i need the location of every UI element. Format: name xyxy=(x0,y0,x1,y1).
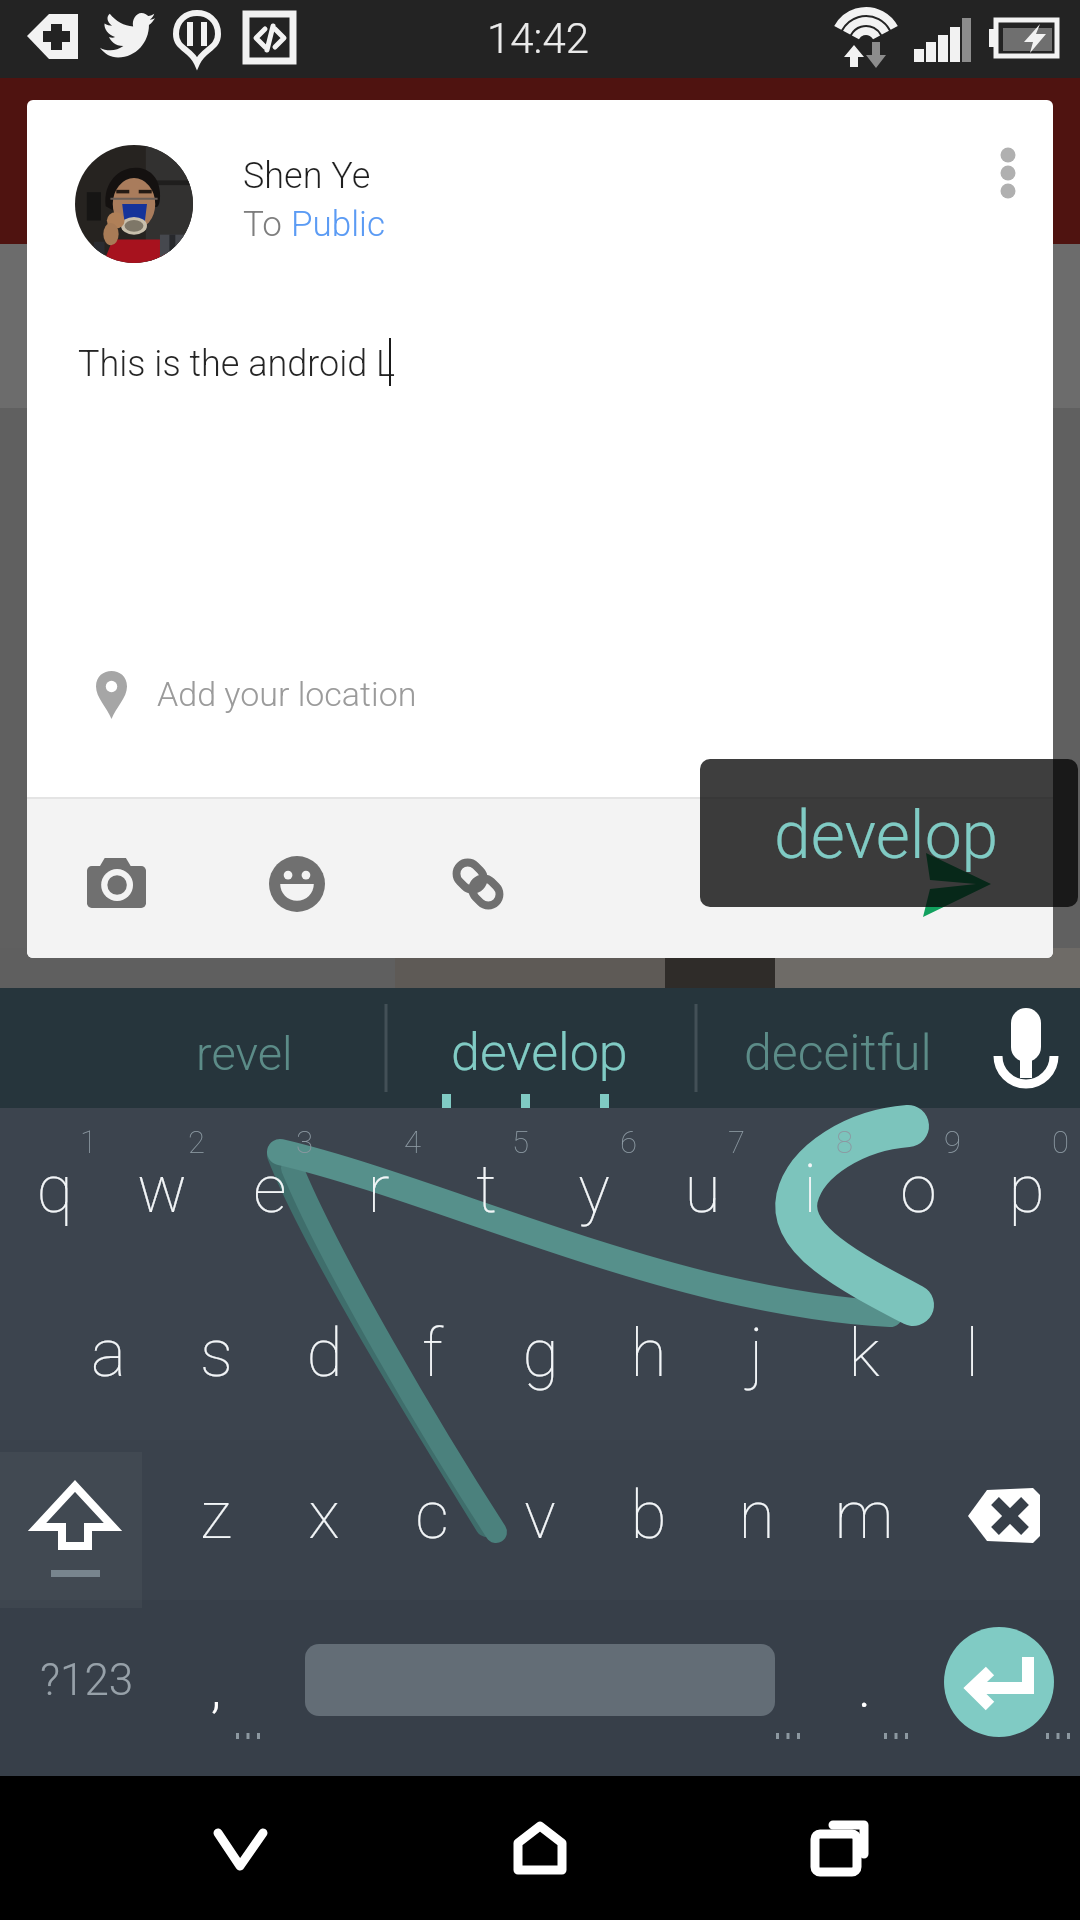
button[interactable] xyxy=(864,1108,972,1272)
staticText: To xyxy=(243,204,291,245)
staticText: Add your location xyxy=(157,674,417,714)
button[interactable] xyxy=(27,650,1053,740)
button[interactable] xyxy=(386,988,696,1108)
staticText: b xyxy=(630,1477,667,1554)
staticText: . xyxy=(858,1659,871,1720)
button[interactable]: Back xyxy=(150,1776,330,1920)
staticText: x xyxy=(308,1477,340,1554)
button[interactable]: Recents xyxy=(750,1776,930,1920)
button[interactable]: Camera xyxy=(59,830,174,936)
button[interactable] xyxy=(702,1432,810,1592)
button[interactable] xyxy=(0,988,386,1108)
staticText: 8 xyxy=(836,1124,853,1160)
staticText: develop xyxy=(451,1022,628,1083)
button[interactable] xyxy=(930,1592,1080,1776)
staticText: i xyxy=(803,1151,817,1228)
staticText: 4 xyxy=(404,1124,421,1160)
button[interactable] xyxy=(594,1432,702,1592)
button[interactable] xyxy=(648,1108,756,1272)
staticText: w xyxy=(137,1151,187,1228)
staticText: This is the android L xyxy=(78,343,396,385)
staticText: m xyxy=(834,1477,894,1554)
staticText: ?123 xyxy=(40,1654,134,1706)
staticText: v xyxy=(524,1477,556,1554)
staticText: r xyxy=(367,1151,390,1228)
button[interactable] xyxy=(0,1592,160,1776)
staticText: k xyxy=(848,1315,880,1392)
button[interactable] xyxy=(324,1108,432,1272)
button[interactable] xyxy=(972,1108,1080,1272)
button[interactable] xyxy=(700,759,1078,907)
button[interactable] xyxy=(54,1272,162,1432)
staticText: g xyxy=(522,1315,559,1392)
staticText: f xyxy=(422,1315,443,1392)
staticText: n xyxy=(738,1477,775,1554)
staticText: Public xyxy=(291,204,385,245)
button[interactable] xyxy=(810,1432,918,1592)
button[interactable]: Home xyxy=(450,1776,630,1920)
button[interactable] xyxy=(702,1272,810,1432)
button[interactable] xyxy=(0,1432,140,1592)
button[interactable] xyxy=(940,1432,1080,1592)
staticText: 3 xyxy=(296,1124,313,1160)
staticText: l xyxy=(965,1315,979,1392)
staticText: o xyxy=(900,1151,937,1228)
button[interactable] xyxy=(0,1108,108,1272)
staticText: y xyxy=(578,1151,610,1228)
staticText: p xyxy=(1008,1151,1045,1228)
staticText: revel xyxy=(196,1026,293,1081)
staticText: u xyxy=(684,1151,721,1228)
button[interactable]: Emoji xyxy=(241,828,353,940)
staticText: s xyxy=(200,1315,233,1392)
button[interactable] xyxy=(594,1272,702,1432)
button[interactable] xyxy=(486,1272,594,1432)
staticText: q xyxy=(36,1151,73,1228)
button[interactable] xyxy=(432,1108,540,1272)
button[interactable] xyxy=(108,1108,216,1272)
button[interactable]: More options xyxy=(945,120,1053,246)
staticText: a xyxy=(91,1315,126,1392)
button[interactable]: Attach link xyxy=(422,828,534,940)
button[interactable] xyxy=(756,1108,864,1272)
button[interactable] xyxy=(696,988,960,1108)
staticText: d xyxy=(306,1315,343,1392)
staticText: j xyxy=(749,1315,764,1392)
button[interactable] xyxy=(270,1432,378,1592)
button[interactable] xyxy=(216,1108,324,1272)
staticText: 6 xyxy=(620,1124,637,1160)
staticText: 0 xyxy=(1052,1124,1069,1160)
button[interactable] xyxy=(270,1272,378,1432)
button[interactable] xyxy=(162,1432,270,1592)
staticText: t xyxy=(476,1151,497,1228)
staticText: , xyxy=(211,1659,221,1720)
staticText: z xyxy=(200,1477,232,1554)
staticText: Shen Ye xyxy=(243,155,371,197)
button[interactable] xyxy=(162,1272,270,1432)
button[interactable] xyxy=(540,1108,648,1272)
button[interactable] xyxy=(918,1272,1026,1432)
staticText: 14:42 xyxy=(487,14,590,63)
staticText: e xyxy=(253,1151,287,1228)
staticText: 5 xyxy=(512,1124,529,1160)
button[interactable] xyxy=(378,1432,486,1592)
staticText: deceitful xyxy=(744,1024,932,1083)
button[interactable] xyxy=(378,1272,486,1432)
staticText: 7 xyxy=(728,1124,745,1160)
staticText: 1 xyxy=(80,1124,97,1160)
staticText: c xyxy=(415,1477,449,1554)
staticText: 2 xyxy=(188,1124,205,1160)
button[interactable] xyxy=(290,1592,790,1776)
staticText: 9 xyxy=(944,1124,961,1160)
staticText: develop xyxy=(774,797,999,874)
button[interactable] xyxy=(810,1272,918,1432)
button[interactable] xyxy=(486,1432,594,1592)
staticText: h xyxy=(630,1315,667,1392)
